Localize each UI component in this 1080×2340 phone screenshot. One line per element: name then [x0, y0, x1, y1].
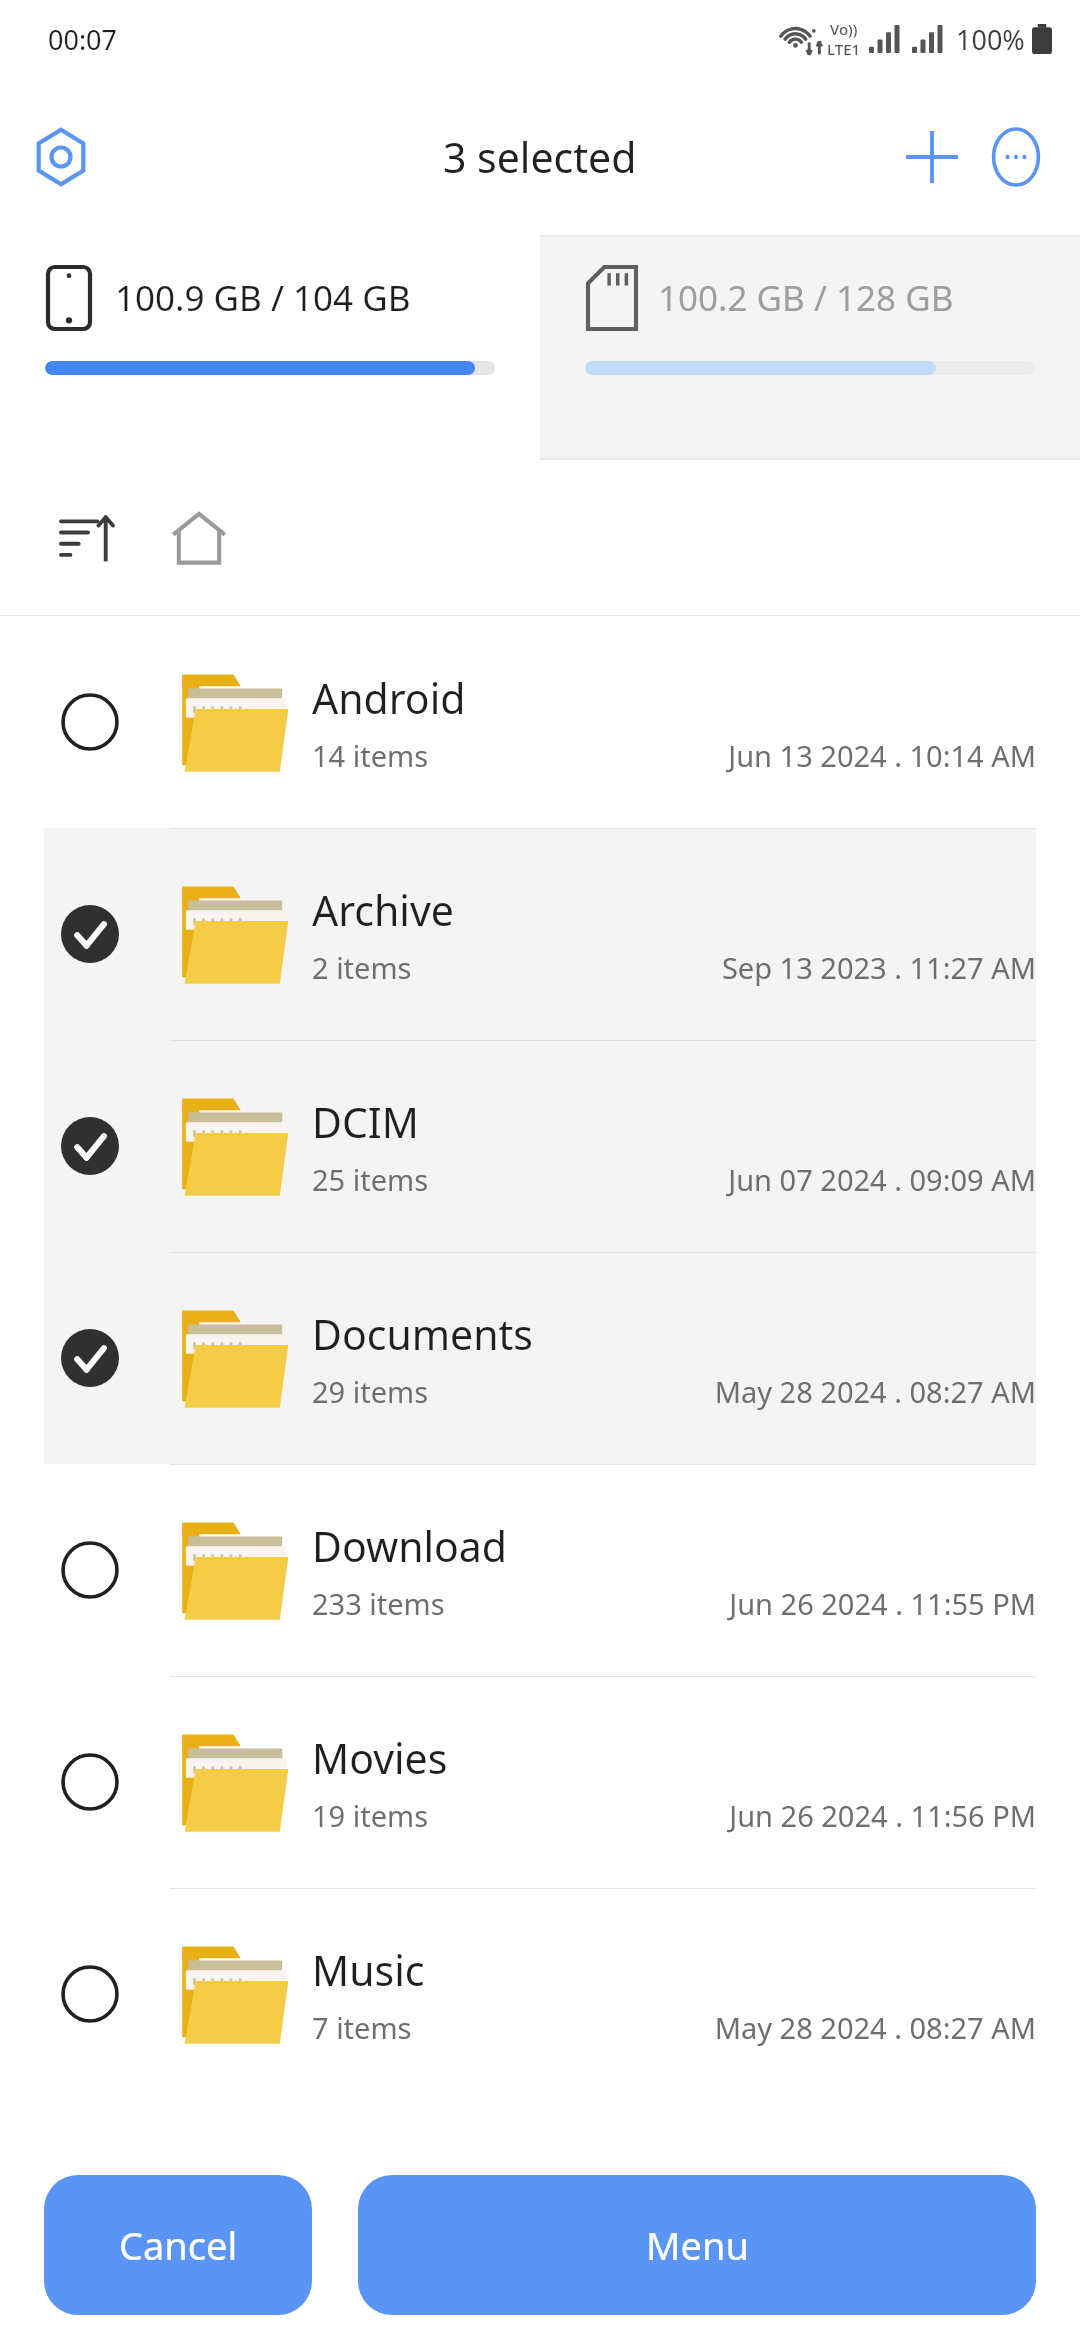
button[interactable]: Sort	[42, 493, 132, 583]
staticText: Archive	[312, 882, 454, 938]
staticText: 233 items	[312, 1584, 445, 1623]
staticText: DCIM	[312, 1094, 419, 1150]
button[interactable]: Home	[154, 493, 244, 583]
staticText: Download	[312, 1518, 508, 1574]
button[interactable]: DCIM	[0, 1040, 1080, 1252]
staticText: May 28 2024 . 08:27 AM	[714, 2008, 1036, 2047]
button[interactable]: Select all	[22, 118, 100, 196]
staticText: Menu	[646, 2219, 749, 2271]
button[interactable]: Add	[890, 115, 974, 199]
staticText: Vo))	[830, 19, 858, 39]
staticText: 100.2 GB / 128 GB	[658, 274, 954, 322]
button[interactable]: Menu	[358, 2175, 1036, 2315]
button[interactable]: Documents	[0, 1252, 1080, 1464]
staticText: Jun 13 2024 . 10:14 AM	[728, 736, 1036, 775]
staticText: 3 selected	[443, 129, 637, 185]
button[interactable]: Archive	[0, 828, 1080, 1040]
staticText: 00:07	[48, 21, 118, 58]
button[interactable]: Android	[0, 616, 1080, 828]
staticText: Jun 26 2024 . 11:55 PM	[729, 1584, 1036, 1623]
staticText: Jun 07 2024 . 09:09 AM	[728, 1160, 1036, 1199]
staticText: 7 items	[312, 2008, 412, 2047]
staticText: Documents	[312, 1306, 533, 1362]
staticText: Jun 26 2024 . 11:56 PM	[729, 1796, 1036, 1835]
staticText: 100%	[956, 21, 1025, 58]
staticText: Movies	[312, 1730, 448, 1786]
button[interactable]: Movies	[0, 1676, 1080, 1888]
staticText: Sep 13 2023 . 11:27 AM	[721, 948, 1036, 987]
staticText: 19 items	[312, 1796, 429, 1835]
button[interactable]: Download	[0, 1464, 1080, 1676]
staticText: May 28 2024 . 08:27 AM	[714, 1372, 1036, 1411]
staticText: 29 items	[312, 1372, 429, 1411]
staticText: 14 items	[312, 736, 429, 775]
button[interactable]: More options	[974, 115, 1058, 199]
staticText: Android	[312, 670, 466, 726]
staticText: Cancel	[119, 2219, 238, 2271]
staticText: 2 items	[312, 948, 412, 987]
staticText: 100.9 GB / 104 GB	[115, 274, 411, 322]
staticText: Music	[312, 1942, 425, 1998]
staticText: 25 items	[312, 1160, 429, 1199]
button[interactable]: 100.2 GB / 128 GB	[540, 235, 1080, 460]
button[interactable]: 100.9 GB / 104 GB	[0, 235, 540, 460]
staticText: LTE1	[827, 39, 861, 59]
button[interactable]: Cancel	[44, 2175, 312, 2315]
button[interactable]: Music	[0, 1888, 1080, 2100]
